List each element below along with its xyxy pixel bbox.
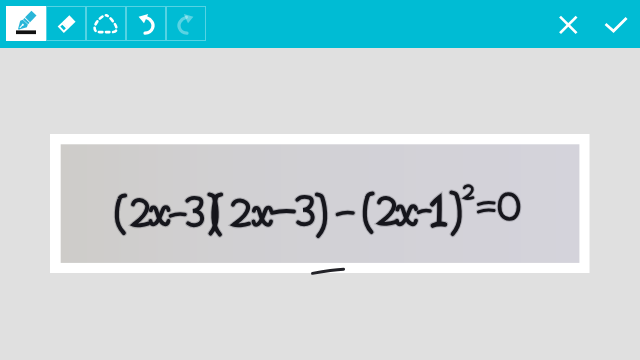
- button[interactable]: Lasso select: [86, 6, 126, 41]
- button[interactable]: Done: [596, 4, 636, 44]
- button[interactable]: Pen: [6, 6, 46, 41]
- button[interactable]: Cancel: [548, 4, 588, 44]
- button[interactable]: Eraser: [46, 6, 86, 41]
- button[interactable]: Redo: [166, 6, 206, 41]
- button[interactable]: Undo: [126, 6, 166, 41]
